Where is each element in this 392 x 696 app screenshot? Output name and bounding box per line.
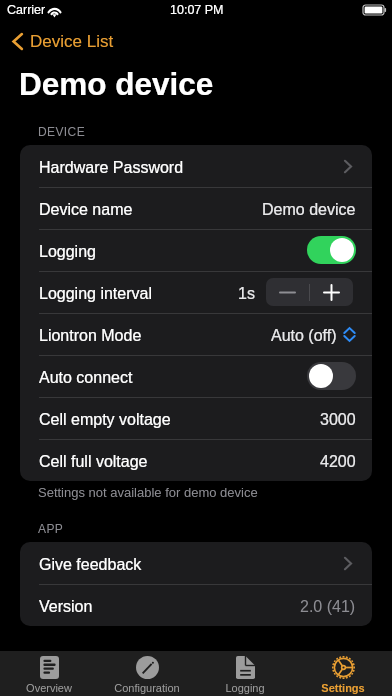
- staticText: APP: [38, 522, 64, 535]
- staticText: Carrier: [7, 3, 46, 17]
- button[interactable]: Logging interval: [20, 271, 372, 313]
- staticText: Hardware Password: [39, 159, 184, 177]
- staticText: 10:07 PM: [170, 3, 224, 17]
- staticText: Version: [39, 598, 93, 616]
- staticText: Liontron Mode: [39, 327, 142, 345]
- button[interactable]: Logging: [20, 229, 372, 271]
- staticText: 3000: [320, 411, 356, 429]
- button[interactable]: Off: [307, 362, 356, 390]
- staticText: Settings not available for demo device: [38, 485, 258, 500]
- staticText: Logging: [39, 243, 96, 261]
- button[interactable]: Decrease: [266, 278, 309, 306]
- staticText: Demo device: [262, 201, 356, 219]
- staticText: Cell full voltage: [39, 453, 148, 471]
- staticText: Device List: [30, 32, 114, 51]
- button[interactable]: Overview: [0, 651, 98, 696]
- staticText: Give feedback: [39, 556, 142, 574]
- button[interactable]: Auto connect: [20, 355, 372, 397]
- staticText: Auto (off): [271, 327, 337, 345]
- staticText: Demo device: [19, 66, 214, 101]
- button[interactable]: Cell empty voltage: [20, 397, 372, 439]
- staticText: Logging: [225, 682, 265, 694]
- button[interactable]: On: [307, 236, 356, 264]
- staticText: Device name: [39, 201, 133, 219]
- button[interactable]: Device name: [20, 187, 372, 229]
- button[interactable]: Liontron Mode: [20, 313, 372, 355]
- button[interactable]: Logging: [196, 651, 294, 696]
- button[interactable]: Version: [20, 584, 372, 626]
- button[interactable]: Device List: [12, 32, 114, 51]
- button[interactable]: Configuration: [98, 651, 196, 696]
- button[interactable]: Increase: [310, 278, 353, 306]
- button[interactable]: Give feedback: [20, 542, 372, 584]
- staticText: 4200: [320, 453, 356, 471]
- staticText: Auto connect: [39, 369, 133, 387]
- button[interactable]: Cell full voltage: [20, 439, 372, 481]
- button[interactable]: Settings: [294, 651, 392, 696]
- staticText: Logging interval: [39, 285, 152, 303]
- staticText: Configuration: [114, 682, 180, 694]
- staticText: DEVICE: [38, 125, 86, 138]
- staticText: Cell empty voltage: [39, 411, 171, 429]
- staticText: Settings: [321, 682, 365, 694]
- button[interactable]: Hardware Password: [20, 145, 372, 187]
- staticText: 1s: [238, 285, 255, 303]
- staticText: Overview: [26, 682, 72, 694]
- staticText: 2.0 (41): [300, 598, 356, 616]
